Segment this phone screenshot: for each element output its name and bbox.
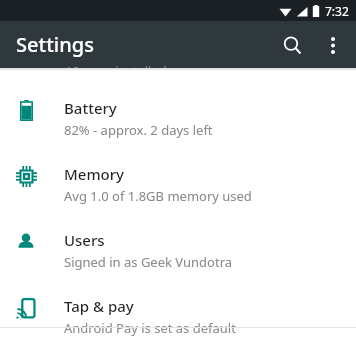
button[interactable]: Search: [270, 23, 314, 67]
staticText: 7:32: [325, 3, 349, 19]
staticText: Battery: [64, 98, 117, 118]
staticText: Memory: [64, 164, 125, 184]
button[interactable]: More options: [314, 26, 352, 64]
staticText: Android Pay is set as default: [64, 319, 236, 337]
staticText: Signed in as Geek Vundotra: [64, 253, 233, 271]
button[interactable]: Users: [0, 205, 356, 271]
button[interactable]: Memory: [0, 139, 356, 205]
staticText: 82% - approx. 2 days left: [64, 121, 213, 139]
staticText: 46 apps installed: [64, 62, 167, 68]
button[interactable]: Tap & pay: [0, 271, 356, 337]
button[interactable]: Battery: [0, 74, 356, 139]
staticText: Avg 1.0 of 1.8GB memory used: [64, 187, 252, 205]
staticText: Users: [64, 230, 105, 250]
staticText: Tap & pay: [64, 296, 134, 316]
staticText: Settings: [16, 31, 94, 58]
